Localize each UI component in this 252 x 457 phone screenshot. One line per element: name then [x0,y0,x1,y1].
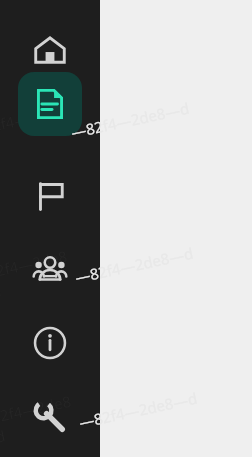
button[interactable]: Tools [18,385,82,449]
staticText: —82f4—2de8—d [77,388,199,432]
button[interactable]: Flags [18,164,82,228]
staticText: —82f4—2de8—d [0,100,73,160]
staticText: —82f4—2de8—d [69,98,191,142]
staticText: —82f4—2de8—d [0,390,81,450]
button[interactable]: Documents [18,72,82,136]
staticText: —82f4—2de8—d [0,245,77,305]
staticText: —82f4—2de8—d [73,243,195,287]
button[interactable]: People [18,238,82,302]
button[interactable]: Info [18,311,82,375]
button[interactable]: Home [18,18,82,82]
